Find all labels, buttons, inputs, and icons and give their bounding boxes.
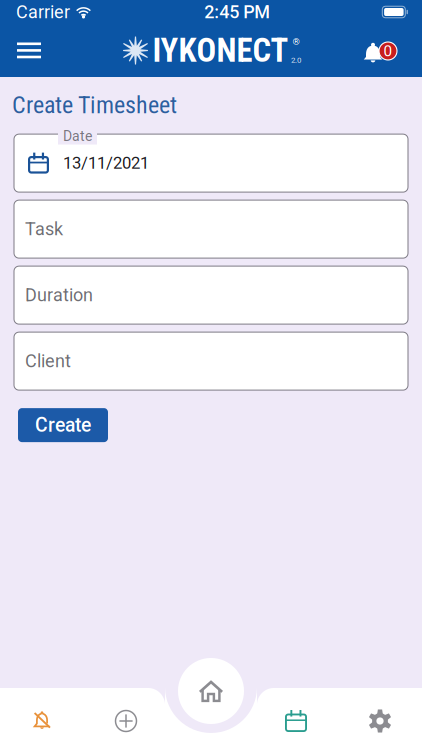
button[interactable]: Add — [84, 692, 168, 750]
staticText: Date — [63, 128, 92, 144]
button[interactable]: Menu — [0, 26, 65, 74]
staticText: ® — [292, 36, 299, 47]
staticText: 2.0 — [291, 55, 301, 65]
staticText: Duration — [25, 285, 93, 306]
button[interactable]: Home — [174, 654, 248, 728]
button[interactable]: Notifications — [352, 25, 422, 75]
staticText: Create — [35, 414, 91, 436]
button[interactable]: Create — [18, 408, 108, 442]
staticText: 13/11/2021 — [63, 153, 149, 173]
staticText: Create Timesheet — [12, 91, 177, 119]
staticText: 2:45 PM — [204, 1, 270, 23]
staticText: Task — [25, 219, 63, 240]
button[interactable]: Settings — [338, 692, 422, 750]
staticText: 0 — [383, 42, 392, 60]
staticText: Client — [25, 351, 71, 372]
button[interactable]: Mute notifications — [0, 692, 84, 750]
staticText: Carrier — [16, 1, 70, 23]
button[interactable]: Calendar — [254, 692, 338, 750]
staticText: IYKONECT — [152, 31, 288, 70]
